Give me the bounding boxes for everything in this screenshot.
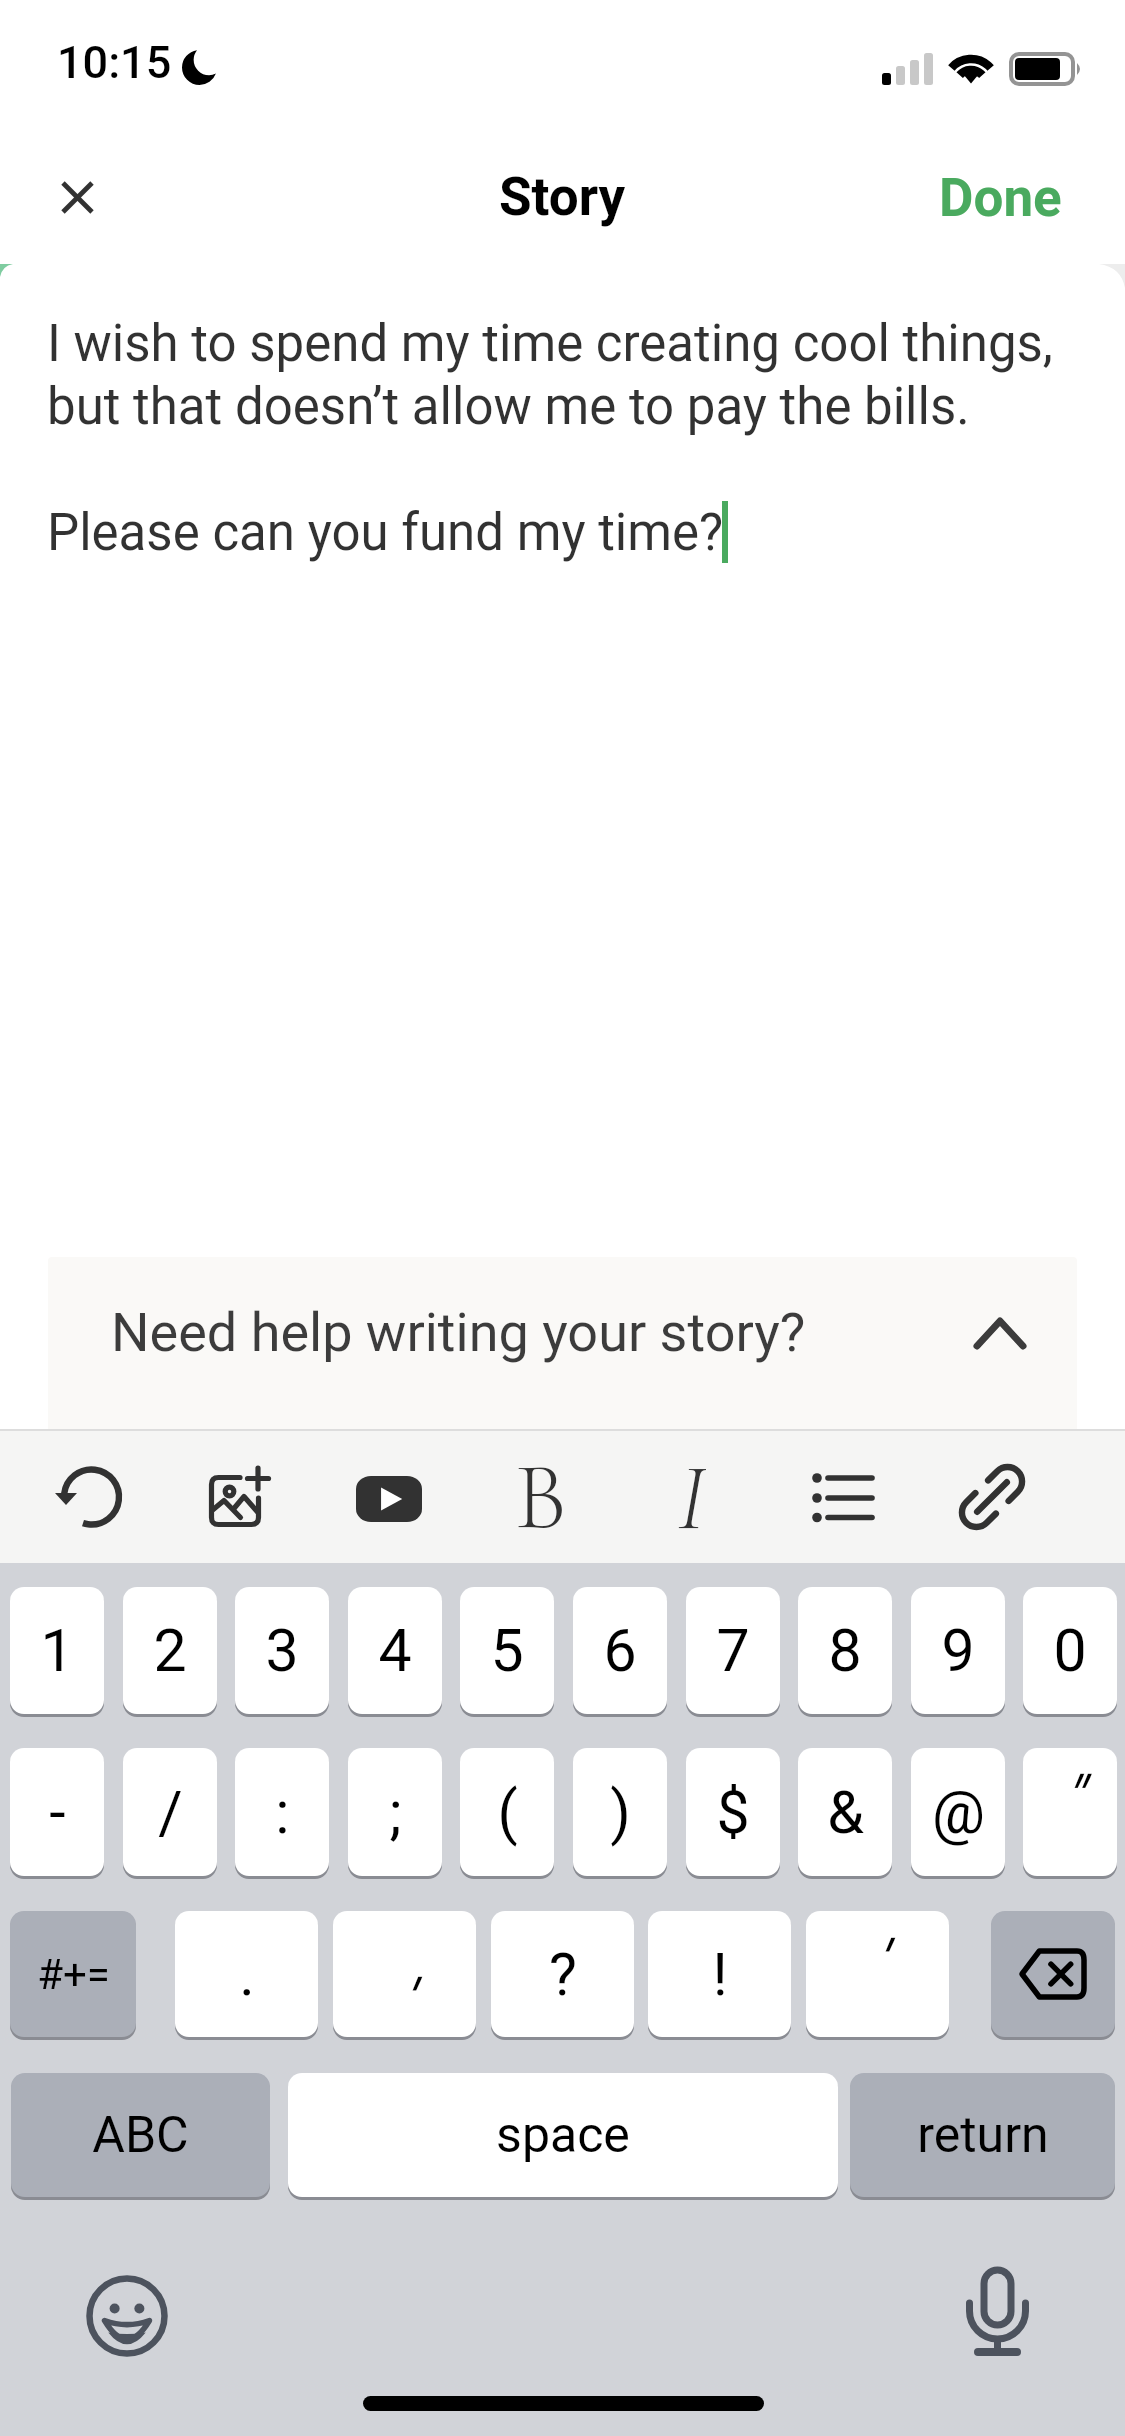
button[interactable]: Backspace <box>991 1911 1115 2037</box>
button[interactable]: & <box>798 1748 892 1876</box>
button[interactable]: @ <box>911 1748 1005 1876</box>
staticText: 4 <box>378 1616 412 1685</box>
button[interactable]: #+= <box>10 1911 136 2037</box>
button[interactable]: Add video <box>333 1441 445 1553</box>
staticText: I wish to spend my time creating cool th… <box>47 314 1079 562</box>
button[interactable]: : <box>235 1748 329 1876</box>
button[interactable]: 7 <box>686 1587 780 1714</box>
button[interactable]: 5 <box>460 1587 554 1714</box>
button[interactable]: ? <box>491 1911 634 2037</box>
staticText: @ <box>932 1778 985 1847</box>
button[interactable]: ! <box>648 1911 791 2037</box>
button[interactable]: ) <box>573 1748 667 1876</box>
staticText: 9 <box>941 1616 975 1685</box>
button[interactable]: Emoji keyboard <box>86 2275 168 2357</box>
button[interactable]: Insert link <box>936 1441 1048 1553</box>
button[interactable]: Add image <box>183 1441 295 1553</box>
staticText: ; <box>389 1778 402 1847</box>
button[interactable]: ; <box>348 1748 442 1876</box>
button[interactable]: 8 <box>798 1587 892 1714</box>
button[interactable]: ABC <box>11 2073 270 2197</box>
staticText: - <box>49 1778 66 1847</box>
staticText: 7 <box>716 1616 750 1685</box>
button[interactable]: Undo <box>35 1441 147 1553</box>
staticText: ABC <box>92 2106 189 2165</box>
button[interactable]: ( <box>460 1748 554 1876</box>
button[interactable]: 4 <box>348 1587 442 1714</box>
staticText: ? <box>549 1940 577 2009</box>
staticText: Done <box>939 167 1062 229</box>
button[interactable]: 1 <box>10 1587 104 1714</box>
staticText: 6 <box>603 1616 637 1685</box>
button[interactable]: 2 <box>123 1587 217 1714</box>
button[interactable]: return <box>850 2073 1115 2197</box>
staticText: & <box>827 1778 864 1847</box>
button[interactable]: Done <box>908 150 1093 246</box>
staticText: . <box>239 1940 255 2009</box>
button[interactable]: 3 <box>235 1587 329 1714</box>
staticText: return <box>917 2106 1049 2165</box>
staticText: / <box>158 1778 183 1847</box>
staticText: 1 <box>40 1616 74 1685</box>
button[interactable]: space <box>288 2073 838 2197</box>
button[interactable]: Bulleted list <box>785 1441 897 1553</box>
staticText: ! <box>712 1940 728 2009</box>
staticText: 2 <box>153 1616 187 1685</box>
button[interactable]: ″ <box>1023 1748 1117 1876</box>
button[interactable]: Bold <box>484 1441 596 1553</box>
button[interactable]: 0 <box>1023 1587 1117 1714</box>
staticText: $ <box>716 1778 750 1847</box>
staticText: 3 <box>265 1616 299 1685</box>
button[interactable]: - <box>10 1748 104 1876</box>
button[interactable]: ′ <box>806 1911 949 2037</box>
staticText: Story <box>499 166 626 228</box>
button[interactable]: Italic <box>635 1441 747 1553</box>
staticText: 8 <box>828 1616 862 1685</box>
button[interactable]: / <box>123 1748 217 1876</box>
staticText: 5 <box>490 1616 524 1685</box>
button[interactable]: 9 <box>911 1587 1005 1714</box>
staticText: B <box>514 1440 567 1554</box>
staticText: 0 <box>1053 1616 1087 1685</box>
button[interactable]: . <box>175 1911 318 2037</box>
staticText: ( <box>497 1778 518 1847</box>
staticText: ) <box>610 1778 631 1847</box>
staticText: space <box>496 2106 630 2165</box>
staticText: ″ <box>1061 1763 1080 1832</box>
button[interactable]: $ <box>686 1748 780 1876</box>
button[interactable]: Need help writing your story? <box>48 1257 1077 1430</box>
button[interactable]: Voice input <box>960 2262 1036 2364</box>
staticText: 10:15 <box>57 36 172 89</box>
staticText: Need help writing your story? <box>111 1301 806 1364</box>
button[interactable]: ′ <box>333 1911 476 2037</box>
button[interactable]: 6 <box>573 1587 667 1714</box>
staticText: : <box>275 1778 290 1847</box>
staticText: I <box>677 1440 706 1554</box>
staticText: #+= <box>37 1950 110 1999</box>
button[interactable]: Close <box>30 150 125 245</box>
